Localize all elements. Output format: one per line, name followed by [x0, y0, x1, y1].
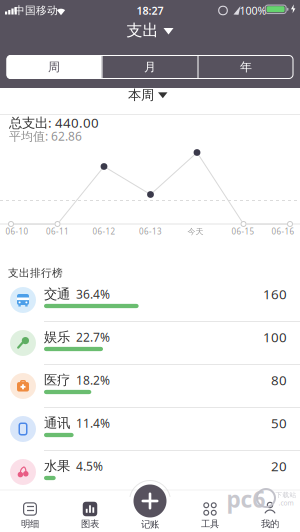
staticText: 100: [263, 328, 287, 346]
button[interactable]: 月: [102, 55, 197, 79]
button[interactable]: 水果: [0, 450, 300, 493]
button[interactable]: 明细: [4, 491, 56, 531]
staticText: 今天: [187, 227, 203, 236]
staticText: 交通: [44, 286, 70, 302]
staticText: 年: [240, 60, 252, 74]
staticText: 06-15: [231, 226, 254, 237]
staticText: 100%: [239, 3, 266, 18]
button[interactable]: 通讯: [0, 407, 300, 450]
staticText: 22.7%: [70, 329, 110, 345]
staticText: 水果: [44, 458, 70, 474]
button[interactable]: 医疗: [0, 364, 300, 407]
button[interactable]: 工具: [184, 491, 236, 531]
staticText: 总支出: 440.00: [9, 114, 99, 131]
staticText: 明细: [21, 518, 39, 530]
staticText: 下载站: [275, 491, 296, 499]
staticText: 支出: [126, 21, 158, 40]
staticText: 图表: [81, 518, 99, 530]
staticText: 50: [271, 414, 287, 432]
button[interactable]: 支出: [120, 19, 180, 41]
staticText: 4.5%: [70, 458, 103, 474]
staticText: 06-10: [5, 226, 28, 237]
staticText: 月: [144, 60, 156, 74]
staticText: 36.4%: [70, 286, 110, 302]
staticText: 18:27: [136, 3, 163, 18]
staticText: 06-12: [92, 226, 115, 237]
button[interactable]: 年: [198, 55, 293, 79]
staticText: pc6: [226, 484, 265, 514]
staticText: 医疗: [44, 372, 70, 388]
staticText: 工具: [201, 518, 219, 530]
staticText: 记账: [141, 519, 159, 530]
button[interactable]: 图表: [64, 491, 116, 531]
staticText: 06-13: [139, 226, 162, 237]
button[interactable]: 交通: [0, 278, 300, 321]
staticText: 支出排行榜: [8, 266, 63, 279]
button[interactable]: 本周: [0, 88, 300, 114]
button[interactable]: 娱乐: [0, 321, 300, 364]
staticText: 我的: [261, 518, 279, 530]
staticText: 06-11: [46, 226, 69, 237]
staticText: 160: [263, 285, 287, 303]
staticText: 通讯: [44, 415, 70, 431]
staticText: 中国移动: [14, 4, 58, 17]
button[interactable]: 记账: [122, 484, 178, 532]
staticText: 18.2%: [70, 372, 110, 388]
button[interactable]: 我的: [244, 491, 296, 531]
staticText: 周: [48, 60, 60, 74]
staticText: 80: [271, 371, 287, 389]
staticText: 本周: [128, 87, 154, 103]
staticText: 20: [271, 457, 287, 475]
staticText: 平均值: 62.86: [9, 128, 82, 144]
staticText: .com: [278, 499, 293, 507]
staticText: 06-16: [271, 226, 294, 237]
button[interactable]: 周: [6, 55, 101, 79]
staticText: 11.4%: [70, 415, 110, 431]
staticText: 娱乐: [44, 329, 70, 345]
